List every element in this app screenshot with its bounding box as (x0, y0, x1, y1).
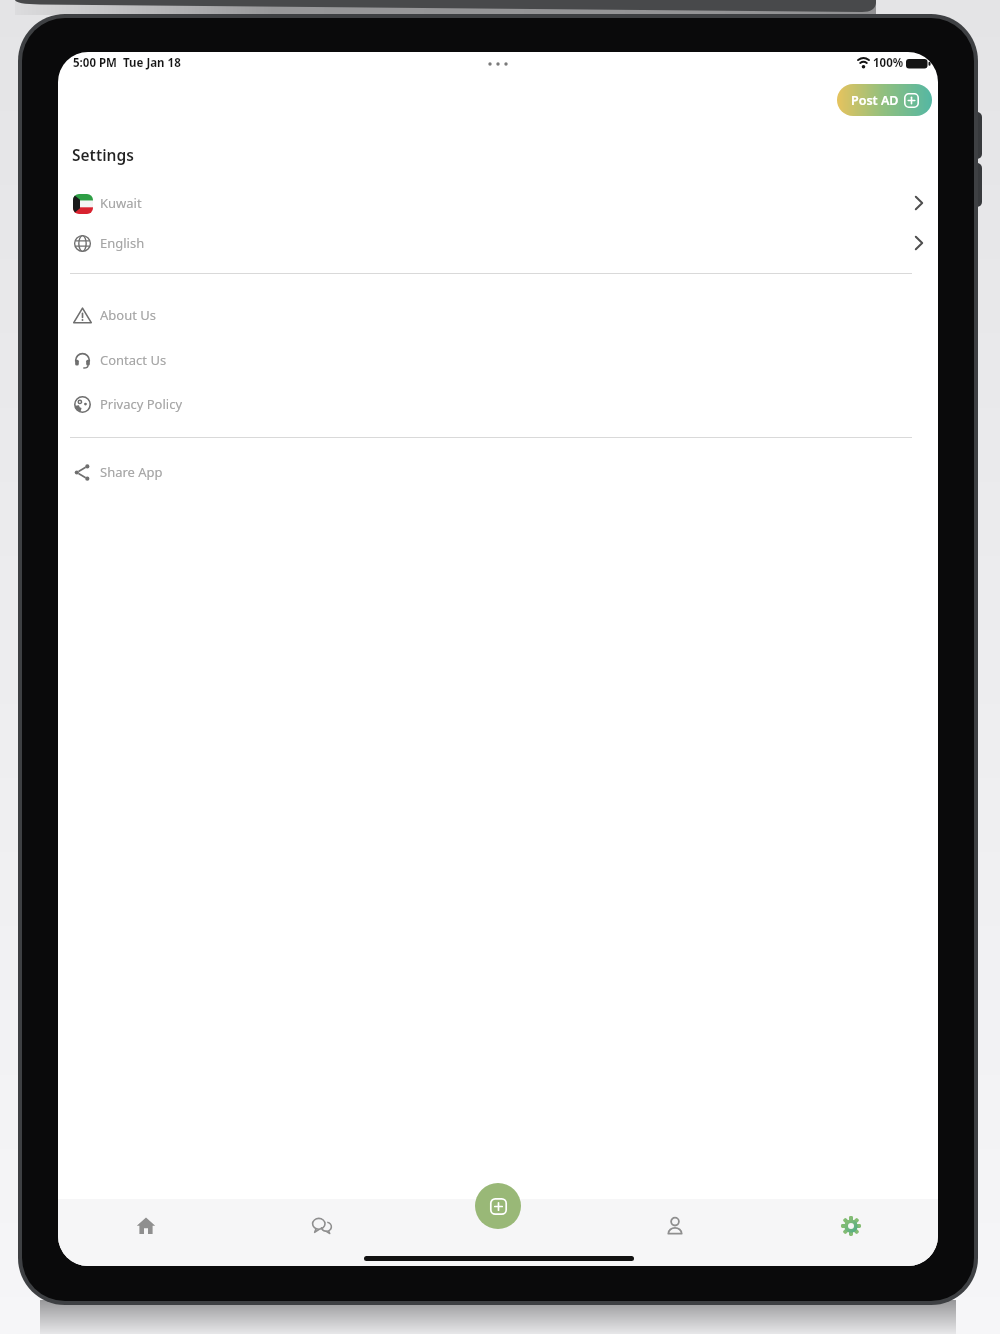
staticText: Post AD (851, 92, 899, 109)
staticText: Kuwait (100, 194, 142, 212)
button[interactable]: Post AD (837, 84, 932, 116)
staticText: Settings (72, 144, 134, 165)
staticText: Privacy Policy (100, 395, 183, 413)
button[interactable] (475, 1183, 521, 1229)
button[interactable] (300, 1204, 344, 1248)
button[interactable]: Kuwait (58, 183, 938, 223)
staticText: 100% (873, 55, 904, 71)
staticText: 5:00 PM (73, 55, 117, 71)
button[interactable] (124, 1204, 168, 1248)
button[interactable]: Contact Us (58, 340, 938, 380)
staticText: Tue Jan 18 (123, 55, 181, 71)
button[interactable]: Share App (58, 452, 938, 492)
button[interactable] (653, 1204, 697, 1248)
staticText: About Us (100, 306, 157, 324)
staticText: Contact Us (100, 351, 167, 369)
button[interactable]: Privacy Policy (58, 384, 938, 424)
staticText: Share App (100, 463, 163, 481)
staticText: English (100, 234, 145, 252)
button[interactable]: About Us (58, 295, 938, 335)
button[interactable] (829, 1204, 873, 1248)
button[interactable]: English (58, 223, 938, 263)
